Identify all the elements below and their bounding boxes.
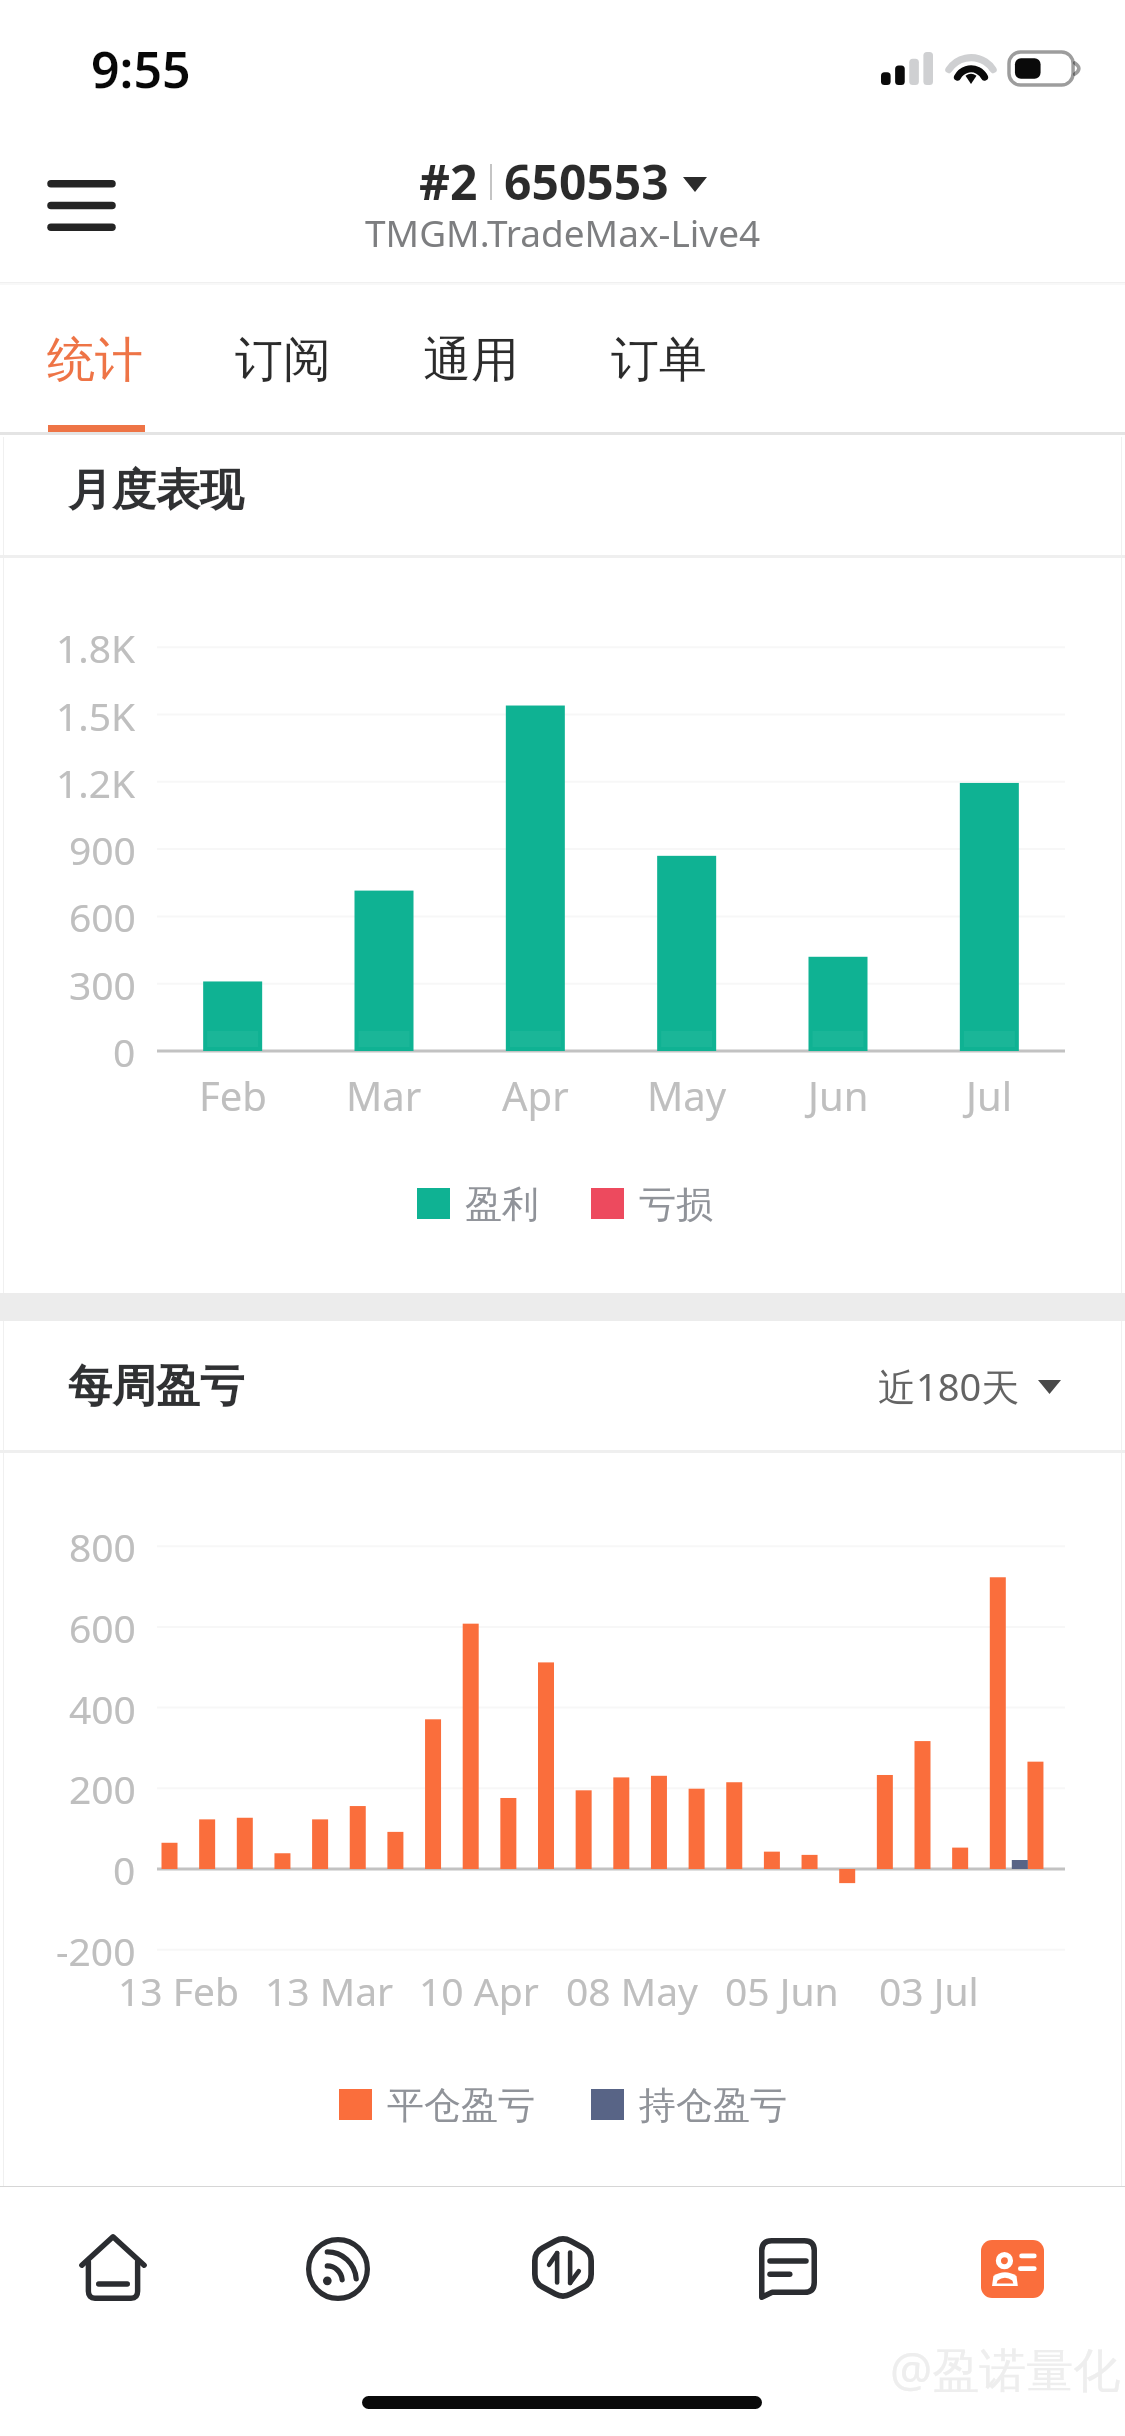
- button[interactable]: 订单: [594, 285, 766, 437]
- staticText: Apr: [502, 1068, 569, 1122]
- staticText: 0: [113, 1025, 136, 1078]
- staticText: May: [647, 1068, 727, 1122]
- staticText: 通用: [423, 330, 519, 390]
- staticText: 10 Apr: [419, 1964, 539, 2017]
- button[interactable]: 近180天: [878, 1360, 1061, 1412]
- button[interactable]: Signals: [225, 2187, 450, 2352]
- staticText: 03 Jul: [879, 1964, 979, 2017]
- staticText: 650553: [504, 149, 669, 214]
- button[interactable]: 统计: [30, 285, 202, 437]
- button[interactable]: #2: [330, 145, 795, 255]
- staticText: 亏损: [639, 1181, 713, 1228]
- staticText: 订单: [611, 330, 707, 390]
- staticText: 0: [113, 1843, 136, 1896]
- staticText: Jun: [808, 1068, 869, 1122]
- staticText: 月度表现: [68, 463, 244, 518]
- button[interactable]: 订阅: [218, 285, 390, 437]
- button[interactable]: Home: [0, 2187, 225, 2352]
- button[interactable]: Trade: [450, 2187, 675, 2352]
- staticText: 600: [69, 1601, 136, 1654]
- button[interactable]: 通用: [406, 285, 578, 437]
- staticText: Mar: [346, 1068, 422, 1122]
- staticText: 300: [69, 958, 136, 1011]
- staticText: 800: [69, 1520, 136, 1573]
- staticText: TMGM.TradeMax-Live4: [365, 207, 761, 257]
- staticText: @盈诺量化: [890, 2337, 1121, 2401]
- staticText: 9:55: [91, 35, 191, 103]
- staticText: 13 Feb: [118, 1964, 239, 2017]
- staticText: 每周盈亏: [68, 1359, 244, 1414]
- staticText: 1.2K: [56, 756, 136, 809]
- staticText: Feb: [199, 1068, 267, 1122]
- staticText: 900: [69, 823, 136, 876]
- staticText: 05 Jun: [725, 1964, 839, 2017]
- staticText: 400: [69, 1682, 136, 1735]
- button[interactable]: Menu: [30, 163, 133, 248]
- staticText: 平仓盈亏: [387, 2082, 535, 2129]
- staticText: 08 May: [566, 1964, 698, 2017]
- staticText: 持仓盈亏: [639, 2082, 787, 2129]
- staticText: Jul: [966, 1068, 1012, 1122]
- staticText: 订阅: [235, 330, 331, 390]
- button[interactable]: Messages: [675, 2187, 900, 2352]
- staticText: 近180天: [878, 1360, 1020, 1412]
- staticText: 盈利: [465, 1181, 539, 1228]
- staticText: 统计: [47, 330, 143, 390]
- staticText: 200: [69, 1762, 136, 1815]
- button[interactable]: Profile: [900, 2187, 1125, 2352]
- staticText: -200: [56, 1924, 136, 1977]
- staticText: 13 Mar: [265, 1964, 394, 2017]
- staticText: #2: [419, 149, 478, 214]
- staticText: 600: [69, 890, 136, 943]
- staticText: 1.8K: [56, 621, 136, 674]
- staticText: 1.5K: [56, 689, 136, 742]
